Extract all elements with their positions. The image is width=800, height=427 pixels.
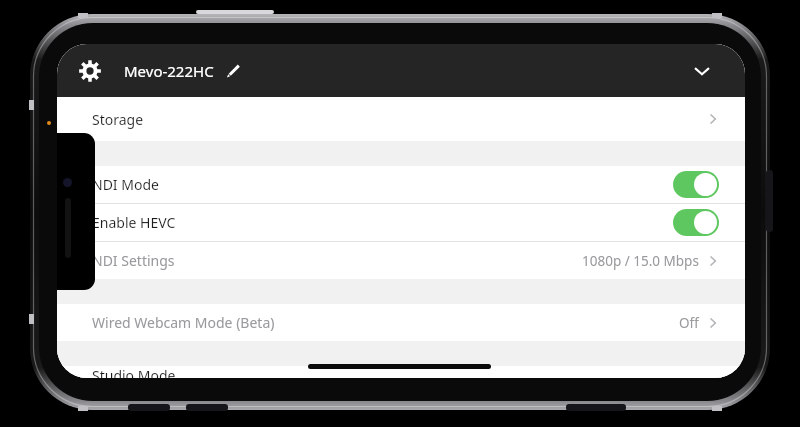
staticText: Enable HEVC [92, 213, 176, 232]
button[interactable]: Toggle on [673, 209, 719, 236]
button[interactable]: Collapse [685, 54, 719, 88]
staticText: Mevo-222HC [124, 61, 214, 81]
staticText: 1080p / 15.0 Mbps [582, 252, 699, 270]
button[interactable]: NDI Settings [57, 242, 745, 279]
button[interactable]: NDI Mode [57, 166, 745, 203]
button[interactable]: Storage [57, 97, 745, 141]
button[interactable]: Mevo-222HC [124, 61, 242, 81]
button[interactable]: Enable HEVC [57, 204, 745, 241]
button[interactable]: Settings [75, 56, 105, 86]
staticText: Off [679, 314, 699, 332]
staticText: Wired Webcam Mode (Beta) [92, 313, 275, 332]
staticText: Studio Mode [92, 366, 176, 378]
button[interactable]: Toggle on [673, 171, 719, 198]
button[interactable]: Wired Webcam Mode (Beta) [57, 304, 745, 341]
staticText: NDI Mode [92, 175, 159, 194]
staticText: NDI Settings [92, 251, 175, 270]
other: Rename [224, 62, 242, 80]
button[interactable]: Studio Mode [57, 366, 745, 378]
staticText: Storage [92, 110, 144, 129]
